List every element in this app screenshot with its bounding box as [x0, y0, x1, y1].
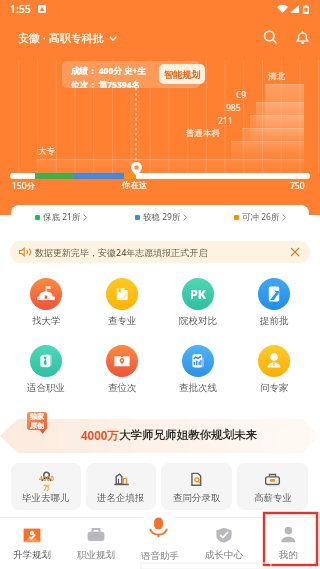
button[interactable]: 问专家 [236, 345, 312, 394]
button[interactable]: 找大学 [8, 278, 84, 327]
staticText: 保底 21所 [43, 211, 81, 223]
staticText: 985 [226, 102, 241, 114]
staticText: 211 [218, 115, 233, 127]
button[interactable]: 安徽 · 高职专科批 [18, 30, 117, 45]
staticText: 高薪专业 [254, 492, 292, 504]
button[interactable]: 查专业 [84, 278, 160, 327]
staticText: 智能规划 [164, 69, 200, 80]
button[interactable]: 数据更新完毕，安徽24年志愿填报正式开启 [10, 241, 310, 263]
staticText: 750 [290, 180, 305, 192]
staticText: 数据更新完毕，安徽24年志愿填报正式开启 [35, 246, 208, 258]
staticText: 安徽 · 高职专科批 [18, 30, 104, 45]
staticText: 查位次 [108, 382, 137, 394]
staticText: 清北 [268, 71, 285, 82]
staticText: 查批次线 [179, 382, 217, 394]
button[interactable]: Search [258, 25, 282, 49]
button[interactable]: 查同分录取 [161, 463, 232, 510]
staticText: 较稳 29所 [143, 211, 181, 223]
staticText: 查同分录取 [173, 492, 221, 504]
button[interactable]: 独家 [0, 419, 320, 453]
button[interactable]: 4000万 [11, 463, 81, 510]
button[interactable]: 提前批 [236, 278, 312, 327]
button[interactable]: 查批次线 [160, 345, 236, 394]
staticText: 可冲 26所 [242, 211, 280, 223]
staticText: 提前批 [260, 315, 289, 327]
button[interactable]: 高薪专业 [237, 463, 308, 510]
button[interactable]: 保底 21所 [11, 205, 111, 229]
staticText: 查专业 [108, 315, 137, 327]
staticText: 150分 [12, 180, 36, 192]
button[interactable]: 查位次 [84, 345, 160, 394]
button[interactable]: 升学规划 [0, 518, 64, 569]
staticText: C9 [236, 89, 247, 101]
staticText: 职业规划 [77, 549, 115, 561]
staticText: PK [190, 286, 207, 303]
button[interactable]: 适合职业 [8, 345, 84, 394]
staticText: 1:55 [10, 2, 31, 16]
staticText: 院校对比 [179, 315, 217, 327]
staticText: 大学师兄师姐教你规划未来 [119, 428, 257, 442]
staticText: 成绩： 400分 史+生 [71, 65, 146, 77]
button[interactable]: 职业规划 [64, 518, 128, 569]
button[interactable]: 成绩： 400分 史+生 [62, 61, 200, 88]
staticText: 进名企填报 [97, 492, 145, 504]
staticText: 问专家 [260, 382, 289, 394]
button[interactable]: PK [160, 278, 236, 327]
staticText: 升学规划 [13, 549, 51, 561]
button[interactable]: 进名企填报 [86, 463, 156, 510]
staticText: 大专 [38, 146, 55, 157]
staticText: 我的 [279, 549, 298, 561]
button[interactable]: Close [289, 246, 301, 258]
button[interactable]: 较稳 29所 [111, 205, 210, 229]
button[interactable]: Voice assistant [140, 509, 177, 546]
staticText: 毕业去哪儿 [22, 492, 70, 504]
staticText: 你在这 [122, 180, 148, 191]
button[interactable]: 智能规划 [159, 64, 205, 84]
staticText: 普通本科 [186, 128, 220, 139]
button[interactable]: Notifications [290, 25, 314, 49]
button[interactable]: 可冲 26所 [210, 205, 309, 229]
staticText: 4000万 [37, 474, 56, 491]
button[interactable]: 我的 [256, 518, 320, 569]
staticText: 语音助手 [141, 550, 179, 562]
staticText: 原创 [30, 421, 44, 430]
staticText: 成长中心 [205, 549, 243, 561]
staticText: 位次： 第75394名 [71, 79, 141, 88]
staticText: 4000万 [81, 428, 119, 444]
staticText: 独家 [30, 412, 44, 421]
staticText: 找大学 [32, 315, 61, 327]
staticText: 适合职业 [27, 382, 65, 394]
button[interactable]: 成长中心 [192, 518, 256, 569]
